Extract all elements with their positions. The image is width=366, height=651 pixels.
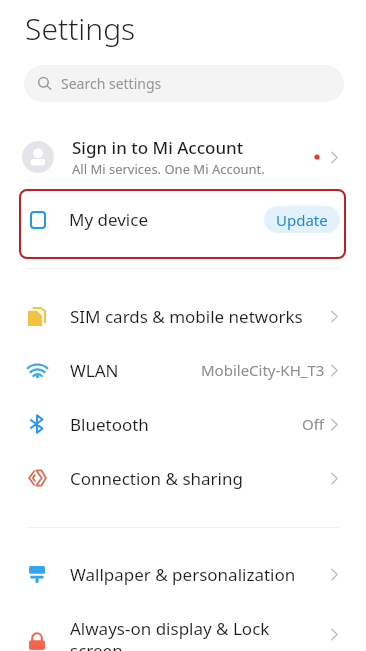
button[interactable]: Bluetooth <box>0 397 366 451</box>
button[interactable]: Search settings <box>24 65 344 102</box>
button[interactable]: My device <box>0 189 366 259</box>
button[interactable]: WLAN <box>0 343 366 397</box>
staticText: All Mi services. One Mi Account. <box>72 160 265 178</box>
staticText: Always-on display & Lock screen <box>70 617 270 651</box>
button[interactable]: Connection & sharing <box>0 451 366 505</box>
button[interactable]: Always-on display & Lock screen <box>0 601 366 651</box>
staticText: SIM cards & mobile networks <box>70 305 303 328</box>
staticText: MobileCity-KH_T3 <box>201 360 325 380</box>
staticText: Sign in to Mi Account <box>72 136 244 159</box>
staticText: Connection & sharing <box>70 467 243 490</box>
staticText: Settings <box>25 8 136 49</box>
staticText: WLAN <box>70 359 119 382</box>
staticText: Update <box>276 210 328 230</box>
button[interactable]: Update <box>264 206 340 233</box>
staticText: Bluetooth <box>70 413 149 436</box>
button[interactable]: Wallpaper & personalization <box>0 547 366 601</box>
button[interactable]: SIM cards & mobile networks <box>0 289 366 343</box>
staticText: My device <box>69 208 264 231</box>
staticText: Search settings <box>61 74 162 93</box>
button[interactable]: Sign in to Mi Account <box>0 131 366 183</box>
staticText: Off <box>302 414 325 434</box>
staticText: Wallpaper & personalization <box>70 563 296 586</box>
